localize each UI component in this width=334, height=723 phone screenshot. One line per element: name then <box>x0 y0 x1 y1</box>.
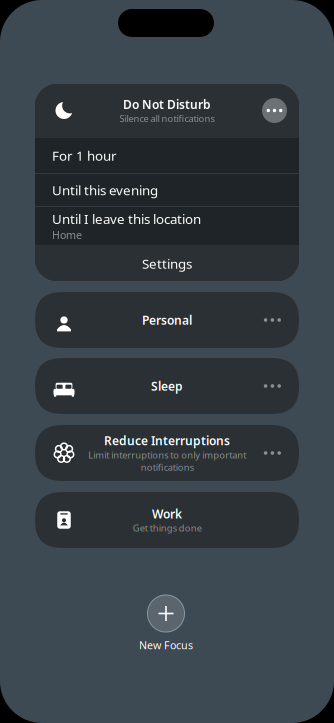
staticText: Until I leave this location <box>52 210 201 228</box>
staticText: Settings <box>142 255 192 272</box>
button[interactable]: Until this evening <box>35 174 299 206</box>
button[interactable]: Settings <box>35 245 299 282</box>
staticText: Do Not Disturb <box>123 96 211 112</box>
button[interactable]: New Focus <box>127 595 205 652</box>
button[interactable]: More Do Not Disturb options <box>262 98 287 123</box>
staticText: Get things done <box>132 522 201 534</box>
staticText: Limit interruptions to only important no… <box>88 449 246 473</box>
button[interactable]: Reduce Interruptions <box>35 425 299 481</box>
staticText: Until this evening <box>52 181 158 199</box>
staticText: Home <box>52 228 82 242</box>
button[interactable]: Personal <box>35 292 299 348</box>
staticText: Reduce Interruptions <box>104 433 230 448</box>
button[interactable]: Sleep <box>35 358 299 414</box>
staticText: New Focus <box>139 638 193 652</box>
staticText: Work <box>152 506 182 522</box>
button[interactable]: Until I leave this location <box>35 207 299 245</box>
staticText: For 1 hour <box>52 147 117 164</box>
staticText: Sleep <box>151 378 183 394</box>
staticText: Personal <box>142 312 192 328</box>
button[interactable]: For 1 hour <box>35 138 299 173</box>
button[interactable]: Work <box>35 492 299 548</box>
staticText: Silence all notifications <box>119 112 214 125</box>
